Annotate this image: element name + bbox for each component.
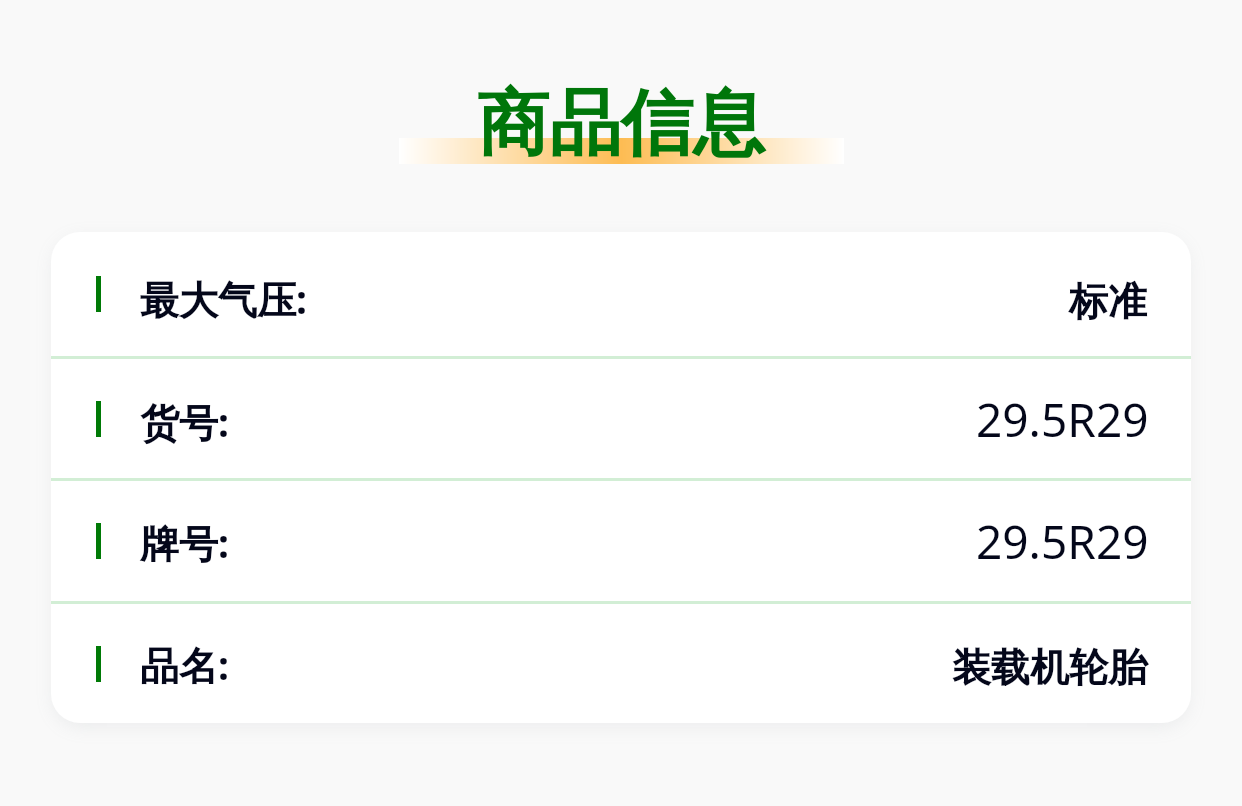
staticText: 29.5R29 [976,510,1149,573]
staticText: 货号: [140,395,229,448]
staticText: 装载机轮胎 [952,643,1147,692]
staticText: 标准 [1069,277,1147,326]
button[interactable]: 牌号: [51,481,1191,601]
staticText: 最大气压: [140,272,307,325]
staticText: 29.5R29 [976,388,1149,451]
staticText: 商品信息 [477,79,765,170]
button[interactable]: 货号: [51,359,1191,478]
staticText: 牌号: [140,516,229,569]
button[interactable]: 品名: [51,604,1191,723]
staticText: 品名: [140,638,229,691]
button[interactable]: 最大气压: [51,232,1191,356]
